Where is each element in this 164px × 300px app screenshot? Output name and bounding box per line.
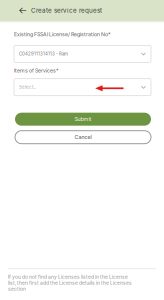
- staticText: Create service request: [31, 7, 102, 14]
- staticText: Select...: [19, 84, 36, 90]
- staticText: Cancel: [74, 134, 91, 140]
- button[interactable]: Select...: [14, 79, 151, 96]
- staticText: If you do not find any Licenses listed i…: [8, 274, 132, 292]
- staticText: Existing FSSAI License/ Registration No*: [14, 31, 111, 37]
- button[interactable]: Back: [0, 0, 31, 21]
- staticText: Items of Services*: [14, 67, 59, 74]
- button[interactable]: C0429111314113 - Ram: [14, 45, 151, 62]
- staticText: C0429111314113 - Ram: [19, 51, 68, 56]
- staticText: Submit: [74, 116, 91, 122]
- button[interactable]: Submit: [15, 113, 151, 126]
- button[interactable]: Cancel: [15, 131, 151, 144]
